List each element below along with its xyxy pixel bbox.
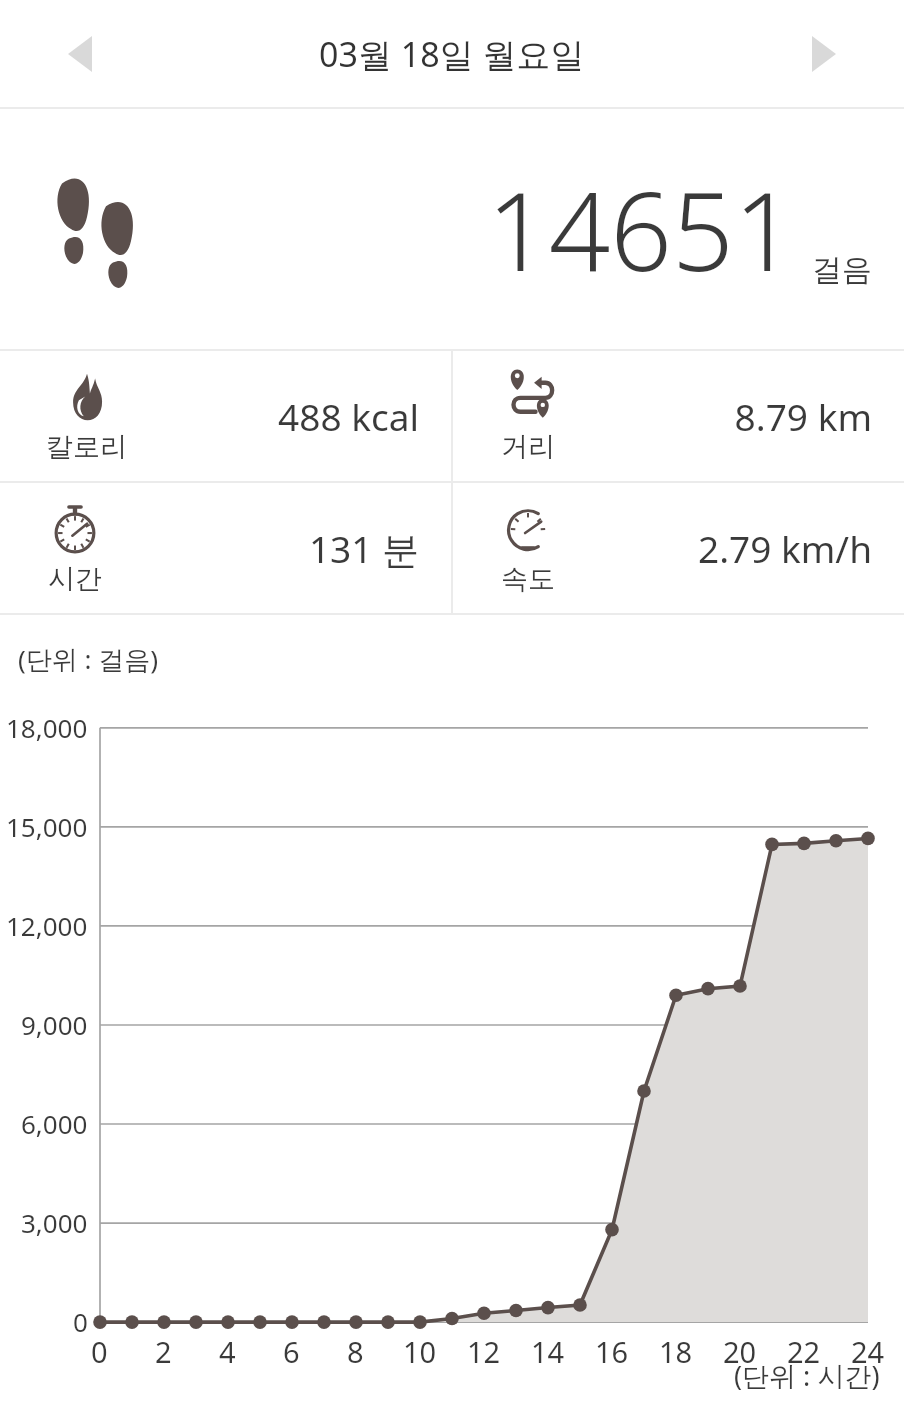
staticText: 12,000 [6, 908, 88, 943]
staticText: 131 분 [0, 523, 419, 574]
button[interactable]: 칼로리 [0, 351, 451, 481]
staticText: (단위 : 시간) [734, 1357, 880, 1394]
button[interactable]: Next day [788, 18, 860, 90]
staticText: 8.79 km [453, 391, 872, 441]
button[interactable]: 속도 [453, 483, 904, 613]
staticText: 0 [91, 1332, 108, 1371]
staticText: 걸음 [812, 251, 872, 289]
staticText: 22 [787, 1332, 821, 1371]
button[interactable]: 14651 [0, 109, 904, 349]
staticText: 10 [403, 1332, 437, 1371]
button[interactable]: 거리 [453, 351, 904, 481]
staticText: 14651 [487, 156, 796, 303]
staticText: 4 [219, 1332, 236, 1371]
staticText: 488 kcal [0, 391, 419, 441]
staticText: 16 [595, 1332, 629, 1371]
staticText: 2 [155, 1332, 172, 1371]
staticText: 18,000 [6, 710, 88, 745]
staticText: (단위 : 걸음) [18, 641, 159, 677]
staticText: 속도 [501, 562, 555, 596]
button[interactable]: 시간 [0, 483, 451, 613]
staticText: 18 [659, 1332, 693, 1371]
staticText: 6 [283, 1332, 300, 1371]
staticText: 12 [467, 1332, 501, 1371]
staticText: 칼로리 [46, 430, 127, 464]
staticText: 14 [531, 1332, 565, 1371]
button[interactable]: Previous day [44, 18, 116, 90]
staticText: 9,000 [21, 1007, 88, 1042]
staticText: 20 [723, 1332, 757, 1371]
staticText: 6,000 [21, 1106, 88, 1141]
staticText: 3,000 [21, 1205, 88, 1240]
staticText: 0 [73, 1304, 88, 1339]
staticText: 시간 [48, 562, 102, 596]
staticText: 거리 [501, 430, 555, 464]
staticText: 8 [347, 1332, 364, 1371]
staticText: 2.79 km/h [453, 523, 872, 573]
staticText: 24 [851, 1332, 885, 1371]
staticText: 03월 18일 월요일 [319, 31, 585, 77]
staticText: 15,000 [6, 809, 88, 844]
